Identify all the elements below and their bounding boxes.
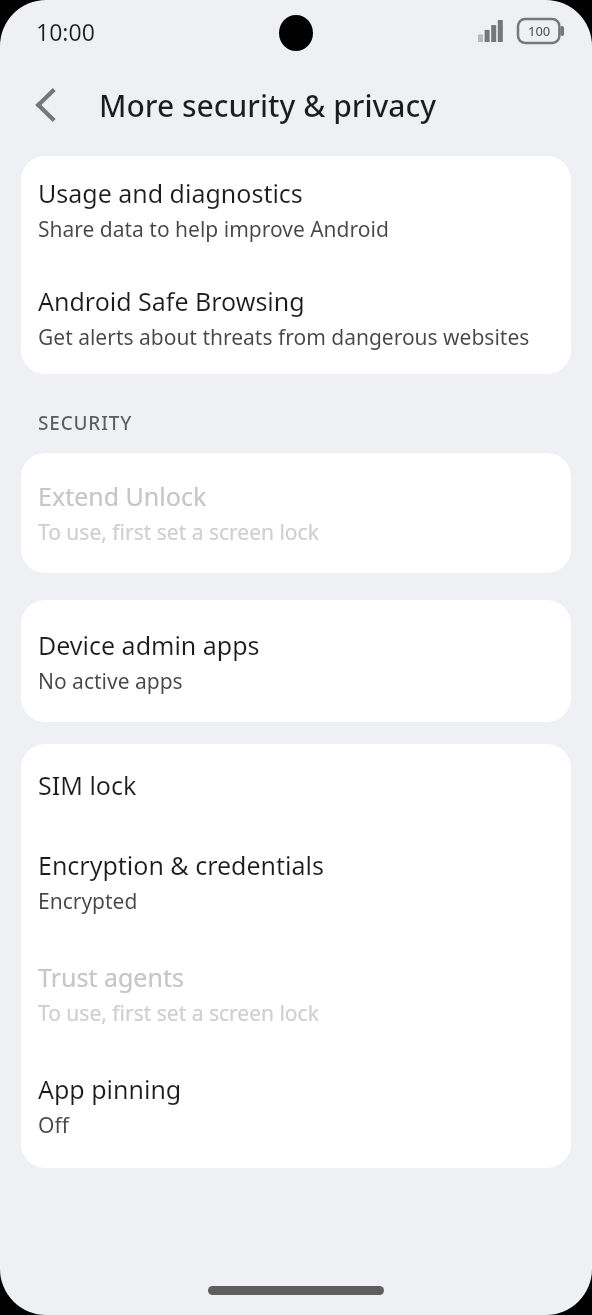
staticText: SECURITY	[38, 410, 133, 436]
staticText: Device admin apps	[38, 628, 260, 662]
staticText: No active apps	[38, 667, 183, 696]
button[interactable]: App pinning	[21, 1072, 571, 1140]
button[interactable]: Back	[18, 77, 74, 133]
staticText: To use, first set a screen lock	[38, 518, 319, 547]
staticText: Encrypted	[38, 887, 138, 916]
staticText: Trust agents	[38, 960, 184, 994]
button[interactable]: Encryption & credentials	[21, 848, 571, 916]
staticText: To use, first set a screen lock	[38, 999, 319, 1028]
staticText: Share data to help improve Android	[38, 215, 389, 244]
staticText: Extend Unlock	[38, 479, 207, 513]
button[interactable]: Trust agents	[21, 960, 571, 1028]
staticText: Usage and diagnostics	[38, 176, 303, 210]
staticText: Get alerts about threats from dangerous …	[38, 323, 530, 352]
button[interactable]: Extend Unlock	[21, 479, 571, 547]
button[interactable]: Android Safe Browsing	[21, 284, 571, 352]
staticText: More security & privacy	[99, 85, 437, 126]
button[interactable]: Usage and diagnostics	[21, 176, 571, 244]
staticText: Encryption & credentials	[38, 848, 324, 882]
button[interactable]: SIM lock	[21, 768, 571, 802]
staticText: 10:00	[36, 16, 95, 47]
staticText: Android Safe Browsing	[38, 284, 305, 318]
staticText: 100	[528, 22, 551, 40]
staticText: SIM lock	[38, 768, 137, 802]
staticText: Off	[38, 1111, 69, 1140]
staticText: App pinning	[38, 1072, 182, 1106]
button[interactable]: Device admin apps	[21, 628, 571, 696]
